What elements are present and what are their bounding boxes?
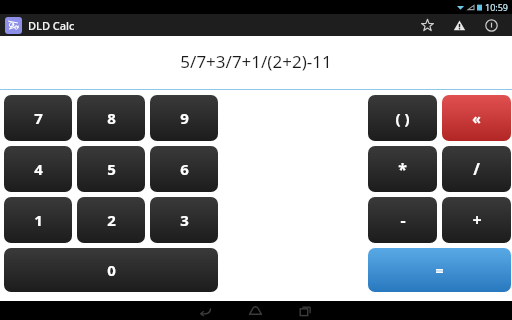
button[interactable]: 3 bbox=[150, 197, 218, 243]
button[interactable]: Back bbox=[193, 301, 217, 320]
staticText: 1 bbox=[34, 210, 43, 230]
button[interactable]: 2 bbox=[77, 197, 145, 243]
button[interactable]: 8 bbox=[77, 95, 145, 141]
staticText: 3 bbox=[180, 210, 189, 230]
button[interactable]: Recent apps bbox=[293, 301, 317, 320]
staticText: « bbox=[472, 109, 481, 128]
staticText: 4 bbox=[34, 159, 43, 179]
button[interactable]: 1 bbox=[4, 197, 72, 243]
staticText: = bbox=[435, 261, 444, 280]
staticText: * bbox=[398, 158, 407, 180]
staticText: 10:59 bbox=[485, 1, 509, 13]
button[interactable]: 0 bbox=[4, 248, 218, 292]
staticText: 0 bbox=[107, 260, 116, 280]
button[interactable]: ( ) bbox=[368, 95, 437, 141]
button[interactable]: - bbox=[368, 197, 437, 243]
staticText: 5 bbox=[107, 159, 116, 179]
staticText: / bbox=[473, 158, 480, 180]
staticText: 2 bbox=[107, 210, 116, 230]
staticText: 8 bbox=[107, 108, 116, 128]
staticText: 5/7+3/7+1/(2+2)-11 bbox=[180, 50, 332, 73]
button[interactable]: 9 bbox=[150, 95, 218, 141]
button[interactable]: 6 bbox=[150, 146, 218, 192]
staticText: 6 bbox=[180, 159, 189, 179]
staticText: DLD Calc bbox=[28, 18, 75, 33]
staticText: + bbox=[472, 209, 482, 231]
button[interactable]: Favorite bbox=[414, 14, 440, 36]
button[interactable]: « bbox=[442, 95, 511, 141]
button[interactable]: Warning bbox=[446, 14, 472, 36]
button[interactable]: * bbox=[368, 146, 437, 192]
button[interactable]: Home bbox=[243, 301, 267, 320]
button[interactable]: + bbox=[442, 197, 511, 243]
button[interactable]: 7 bbox=[4, 95, 72, 141]
button[interactable]: = bbox=[368, 248, 511, 292]
staticText: ( ) bbox=[395, 108, 410, 128]
button[interactable]: 5 bbox=[77, 146, 145, 192]
staticText: 7 bbox=[34, 108, 43, 128]
staticText: 9 bbox=[180, 108, 189, 128]
button[interactable]: / bbox=[442, 146, 511, 192]
button[interactable]: 4 bbox=[4, 146, 72, 192]
button[interactable]: Info bbox=[478, 14, 504, 36]
staticText: - bbox=[400, 209, 406, 231]
